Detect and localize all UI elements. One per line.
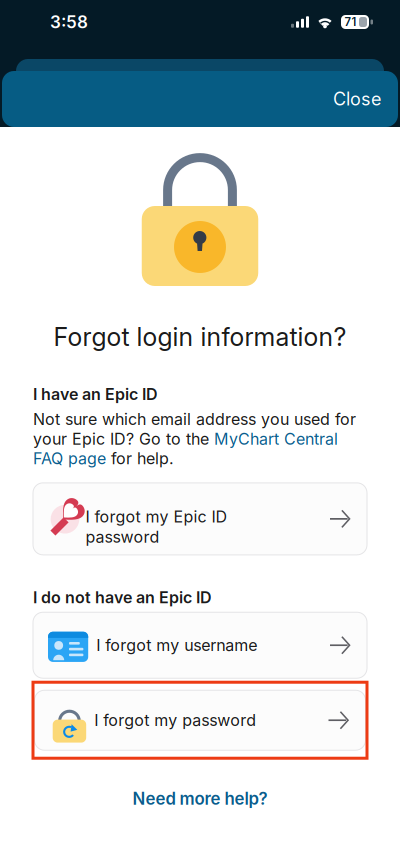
staticText: for help. xyxy=(106,449,174,468)
staticText: I forgot my password xyxy=(94,710,256,730)
button[interactable]: Close xyxy=(316,73,398,125)
staticText: your Epic ID? Go to the xyxy=(33,429,214,448)
staticText: Not sure which email address you used fo… xyxy=(33,410,356,429)
staticText: MyChart Central xyxy=(214,429,338,448)
button[interactable]: I forgot my password xyxy=(34,690,365,750)
button[interactable]: I forgot my username xyxy=(33,612,367,678)
staticText: I do not have an Epic ID xyxy=(33,588,212,607)
button[interactable]: I forgot my Epic ID password xyxy=(33,483,367,555)
staticText: FAQ page xyxy=(33,449,106,468)
staticText: Need more help? xyxy=(132,788,267,809)
staticText: Close xyxy=(333,88,381,110)
staticText: 3:58 xyxy=(50,12,88,32)
button[interactable]: Need more help? xyxy=(112,782,287,815)
staticText: 71 xyxy=(344,15,356,29)
staticText: Forgot login information? xyxy=(53,322,346,352)
staticText: I forgot my username xyxy=(96,635,257,655)
staticText: I forgot my Epic ID password xyxy=(86,507,228,547)
staticText: I have an Epic ID xyxy=(33,384,158,404)
